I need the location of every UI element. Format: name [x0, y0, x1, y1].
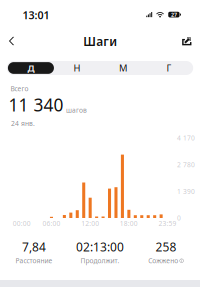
staticText: 00:00 — [13, 219, 31, 228]
staticText: Д — [27, 62, 34, 74]
button[interactable]: М — [100, 62, 146, 74]
staticText: 02:13:00 — [76, 239, 124, 255]
staticText: 06:00 — [42, 219, 60, 228]
button[interactable]: Н — [54, 62, 100, 74]
staticText: 0 — [177, 214, 181, 222]
staticText: 12:00 — [81, 219, 99, 228]
staticText: 1 390 — [177, 187, 195, 196]
staticText: Н — [73, 62, 80, 74]
button[interactable]: 7,84 — [1, 239, 67, 265]
staticText: Продолжит. — [80, 256, 119, 265]
staticText: шагов — [66, 106, 87, 115]
staticText: 24 янв. — [11, 119, 35, 128]
staticText: Расстояние — [15, 256, 52, 265]
staticText: 258 — [155, 239, 176, 255]
button[interactable]: Share — [177, 31, 197, 51]
staticText: 13:01 — [22, 8, 49, 22]
button[interactable]: Back — [1, 31, 21, 51]
button[interactable]: 258 — [133, 239, 199, 265]
staticText: Г — [167, 62, 172, 74]
staticText: 4 170 — [177, 133, 195, 142]
staticText: 23:59 — [159, 219, 177, 228]
staticText: 7,84 — [22, 239, 46, 255]
staticText: 27 — [171, 11, 177, 18]
staticText: 18:00 — [120, 219, 138, 228]
staticText: Всего — [10, 84, 28, 93]
button[interactable]: Д — [8, 62, 54, 74]
staticText: М — [119, 62, 127, 74]
staticText: Шаги — [83, 33, 117, 49]
button[interactable]: 02:13:00 — [67, 239, 133, 265]
button[interactable]: Г — [146, 62, 192, 74]
staticText: 11 340 — [8, 93, 63, 116]
staticText: 2 780 — [177, 160, 195, 169]
staticText: Сожжено — [148, 256, 178, 265]
